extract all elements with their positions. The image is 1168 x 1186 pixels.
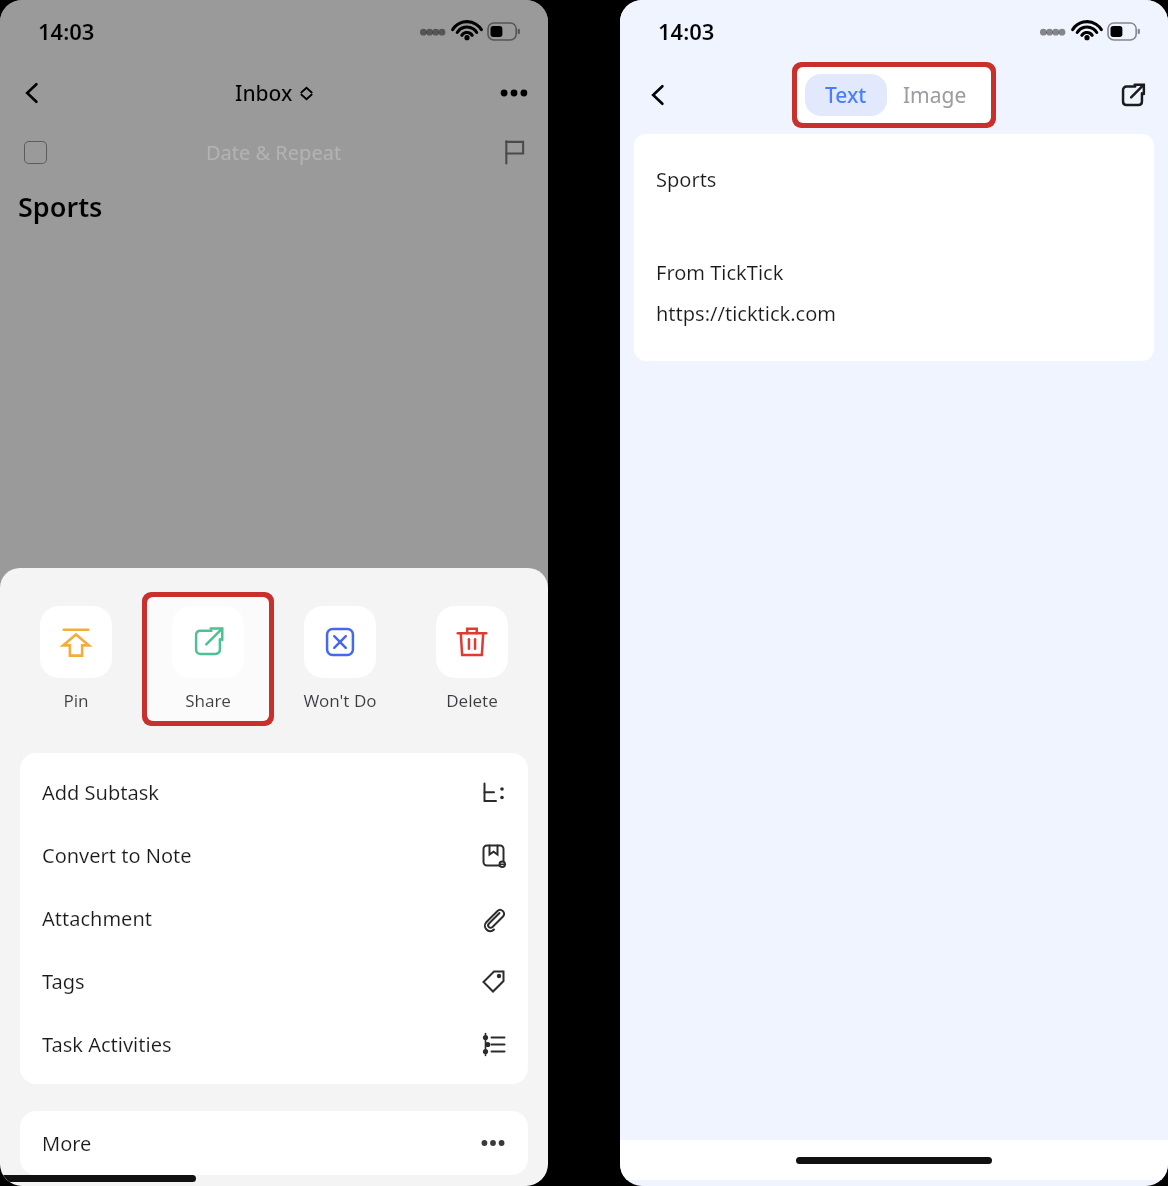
button[interactable]: Back (10, 71, 54, 115)
staticText: Won't Do (303, 689, 377, 712)
staticText: Task Activities (42, 1031, 172, 1058)
staticText: Share (185, 689, 231, 712)
button[interactable]: Share (1110, 73, 1154, 117)
staticText: Pin (63, 689, 89, 712)
button[interactable]: Convert to Note (20, 824, 528, 887)
button[interactable]: Priority flag (494, 132, 534, 172)
staticText: Sports (656, 166, 717, 193)
staticText: Delete (446, 689, 498, 712)
staticText: More (42, 1130, 92, 1157)
button[interactable]: Share (147, 597, 269, 721)
button[interactable]: Inbox (235, 79, 313, 108)
staticText: Attachment (42, 905, 152, 932)
staticText: Tags (42, 968, 85, 995)
staticText: Convert to Note (42, 842, 192, 869)
staticText: 14:03 (38, 16, 95, 46)
staticText: Sports (18, 188, 103, 225)
button[interactable]: Text (805, 74, 887, 116)
button[interactable]: More (20, 1111, 528, 1175)
staticText: Inbox (235, 79, 293, 108)
button[interactable]: Delete (406, 592, 538, 726)
button[interactable]: Tags (20, 950, 528, 1013)
button[interactable]: Pin (10, 592, 142, 726)
staticText: From TickTick (656, 259, 784, 286)
button[interactable]: Won't Do (274, 592, 406, 726)
staticText: 14:03 (658, 16, 715, 46)
button[interactable]: Task Activities (20, 1013, 528, 1076)
button[interactable]: Attachment (20, 887, 528, 950)
button[interactable]: Add Subtask (20, 761, 528, 824)
staticText: Image (903, 81, 967, 109)
button[interactable]: Date & Repeat (206, 139, 342, 166)
button[interactable]: Back (636, 73, 680, 117)
button[interactable]: More options (492, 71, 536, 115)
button[interactable]: Complete task (18, 135, 52, 169)
button[interactable]: Image (887, 74, 983, 116)
staticText: https://ticktick.com (656, 300, 836, 327)
staticText: Text (825, 81, 867, 109)
staticText: Add Subtask (42, 779, 159, 806)
